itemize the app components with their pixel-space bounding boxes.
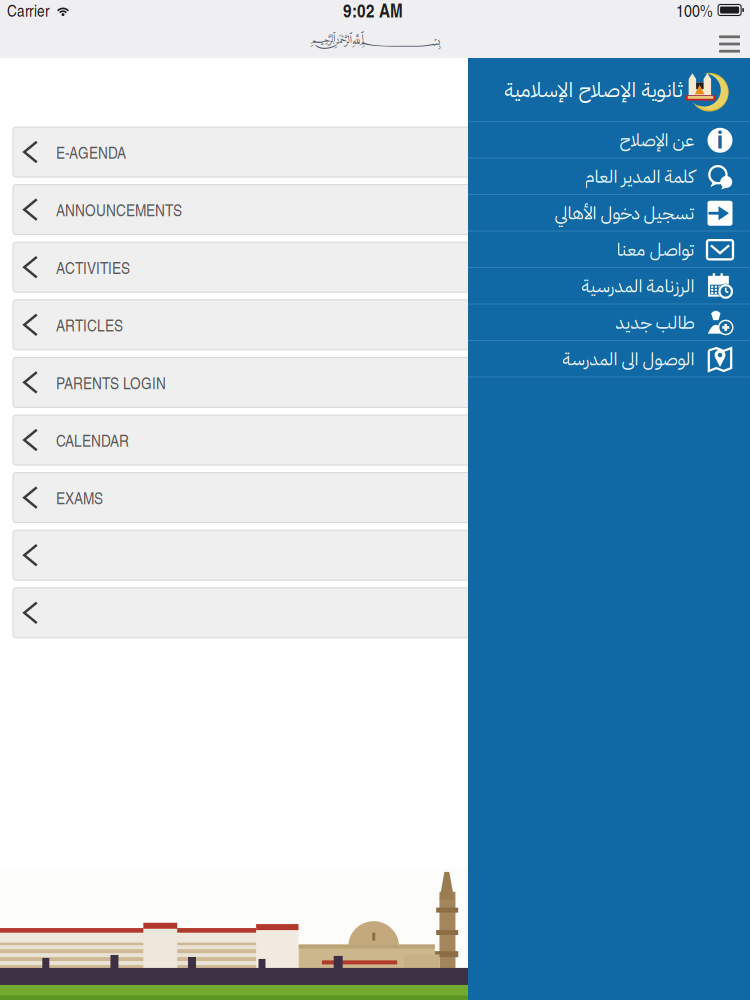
staticText: ثانوية الإصلاح الإسلامية <box>504 74 682 105</box>
staticText: ANNOUNCEMENTS <box>56 198 182 221</box>
staticText: كلمة المدير العام <box>584 163 694 190</box>
staticText: i <box>716 125 723 155</box>
button[interactable]: تسجيل دخول الأهالي <box>468 195 750 231</box>
button[interactable]: ANNOUNCEMENTS <box>13 185 737 235</box>
staticText: طالب جديد <box>615 309 694 336</box>
staticText: 9:02 AM <box>343 0 403 23</box>
staticText: E-AGENDA <box>56 141 126 163</box>
button[interactable]: ACTIVITIES <box>13 242 737 292</box>
button[interactable]: تواصل معنا <box>468 231 750 268</box>
staticText: عن الإصلاح <box>619 127 694 154</box>
staticText: CALENDAR <box>56 429 129 451</box>
staticText: الوصول الى المدرسة <box>562 346 694 373</box>
staticText: 100% <box>676 0 713 22</box>
staticText: EXAMS <box>56 486 103 509</box>
button[interactable]: ARTICLES <box>13 300 737 350</box>
button[interactable]: كلمة المدير العام <box>468 158 750 195</box>
staticText: الرزنامة المدرسية <box>581 273 694 300</box>
staticText: ﷽ <box>309 30 440 50</box>
button[interactable]: Menu <box>709 20 750 58</box>
staticText: ARTICLES <box>56 313 123 336</box>
button[interactable]: عن الإصلاح <box>468 122 750 158</box>
button[interactable]: طالب جديد <box>468 304 750 341</box>
staticText: ACTIVITIES <box>56 256 130 279</box>
button[interactable]: الوصول الى المدرسة <box>468 341 750 377</box>
staticText: تواصل معنا <box>616 236 694 263</box>
button[interactable]: E-AGENDA <box>13 127 737 177</box>
staticText: تسجيل دخول الأهالي <box>554 200 694 227</box>
button[interactable]: الرزنامة المدرسية <box>468 268 750 304</box>
button[interactable] <box>13 588 737 638</box>
button[interactable] <box>13 530 737 580</box>
button[interactable]: EXAMS <box>13 473 737 523</box>
button[interactable]: CALENDAR <box>13 415 737 465</box>
button[interactable]: PARENTS LOGIN <box>13 357 737 407</box>
staticText: PARENTS LOGIN <box>56 371 166 394</box>
staticText: Carrier <box>7 0 50 21</box>
